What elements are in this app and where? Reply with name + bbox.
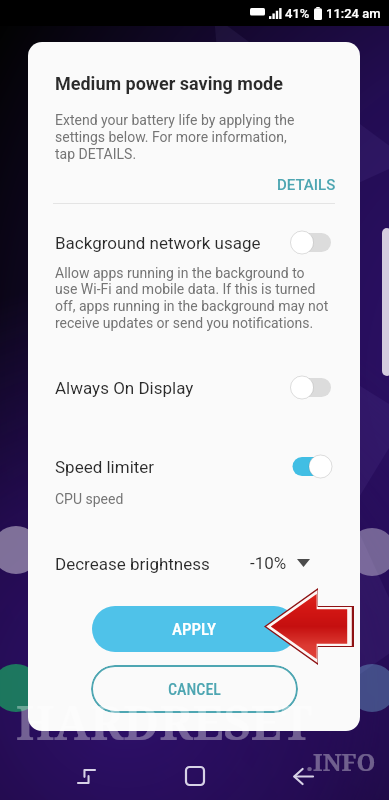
button[interactable]: Background network usage xyxy=(28,231,360,254)
button[interactable]: CANCEL xyxy=(91,665,298,713)
button[interactable]: Home xyxy=(166,757,224,795)
staticText: Always On Display xyxy=(55,378,194,398)
staticText: Decrease brightness xyxy=(55,554,210,574)
staticText: Speed limiter xyxy=(55,457,155,477)
staticText: Medium power saving mode xyxy=(55,73,283,94)
staticText: CANCEL xyxy=(168,680,221,699)
staticText: HARDRESET xyxy=(16,690,313,754)
button[interactable]: APPLY xyxy=(92,606,297,652)
button[interactable]: DETAILS xyxy=(271,171,342,199)
staticText: 11:24 am xyxy=(326,6,381,21)
staticText: Extend your battery life by applying the… xyxy=(55,112,295,163)
staticText: Allow apps running in the background to … xyxy=(55,265,329,332)
button[interactable]: Always On Display xyxy=(28,376,360,399)
staticText: DETAILS xyxy=(277,176,336,194)
staticText: .INFO xyxy=(306,745,376,778)
button[interactable]: Recents xyxy=(57,757,115,795)
staticText: CPU speed xyxy=(55,491,124,507)
staticText: APPLY xyxy=(172,619,217,639)
other: Apply highlight arrow xyxy=(264,588,354,665)
button[interactable]: Back xyxy=(274,757,332,795)
button[interactable]: -10% xyxy=(246,549,314,577)
staticText: 41% xyxy=(285,6,310,21)
button[interactable]: Speed limiter xyxy=(28,455,360,478)
staticText: -10% xyxy=(250,553,287,573)
staticText: Background network usage xyxy=(55,233,261,253)
